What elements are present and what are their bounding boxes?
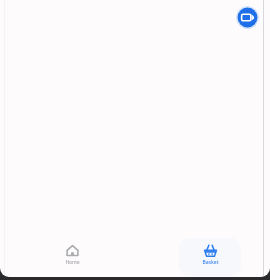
button[interactable]: Basket xyxy=(179,238,241,276)
button[interactable]: Start video call xyxy=(236,6,259,29)
staticText: Home xyxy=(65,259,80,266)
staticText: Basket xyxy=(202,259,219,266)
button[interactable]: Home xyxy=(44,238,100,276)
